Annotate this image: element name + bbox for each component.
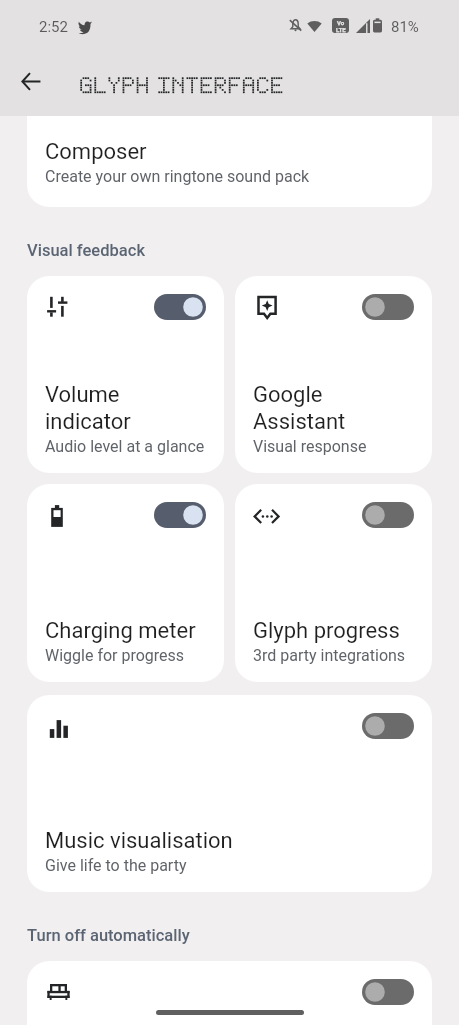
staticText: Turn off automatically bbox=[27, 926, 190, 945]
staticText: Charging meter bbox=[45, 618, 196, 644]
button[interactable]: Music visualisation bbox=[27, 695, 432, 892]
staticText: Glyph progress bbox=[253, 618, 400, 644]
staticText: Visual response bbox=[253, 437, 367, 456]
button[interactable]: Bedtime mode bbox=[27, 961, 432, 1025]
button[interactable]: Bedtime mode bbox=[362, 979, 414, 1005]
staticText: Wiggle for progress bbox=[45, 646, 185, 665]
button[interactable]: Composer bbox=[27, 116, 432, 207]
staticText: Create your own ringtone sound pack bbox=[45, 167, 310, 186]
button[interactable]: Google Assistant bbox=[362, 294, 414, 320]
button[interactable]: Volume indicator bbox=[154, 294, 206, 320]
staticText: LTE bbox=[336, 26, 346, 33]
staticText: Google Assistant bbox=[253, 382, 414, 435]
button[interactable]: Charging meter bbox=[27, 484, 224, 682]
button[interactable]: Glyph progress bbox=[235, 484, 432, 682]
staticText: 2:52 bbox=[39, 18, 68, 36]
button[interactable]: Back bbox=[9, 59, 53, 103]
staticText: Composer bbox=[45, 139, 147, 165]
button[interactable]: Volume indicator bbox=[27, 276, 224, 473]
staticText: Volume indicator bbox=[45, 382, 206, 435]
button[interactable]: Music visualisation bbox=[362, 713, 414, 739]
button[interactable]: Charging meter bbox=[154, 502, 206, 528]
button[interactable]: Google Assistant bbox=[235, 276, 432, 473]
button[interactable]: Glyph progress bbox=[362, 502, 414, 528]
staticText: Audio level at a glance bbox=[45, 437, 205, 456]
staticText: 81% bbox=[391, 18, 419, 36]
staticText: Vo bbox=[337, 19, 345, 26]
staticText: Music visualisation bbox=[45, 828, 233, 854]
staticText: 3rd party integrations bbox=[253, 646, 406, 665]
staticText: Give life to the party bbox=[45, 856, 187, 875]
staticText: Visual feedback bbox=[27, 241, 146, 260]
